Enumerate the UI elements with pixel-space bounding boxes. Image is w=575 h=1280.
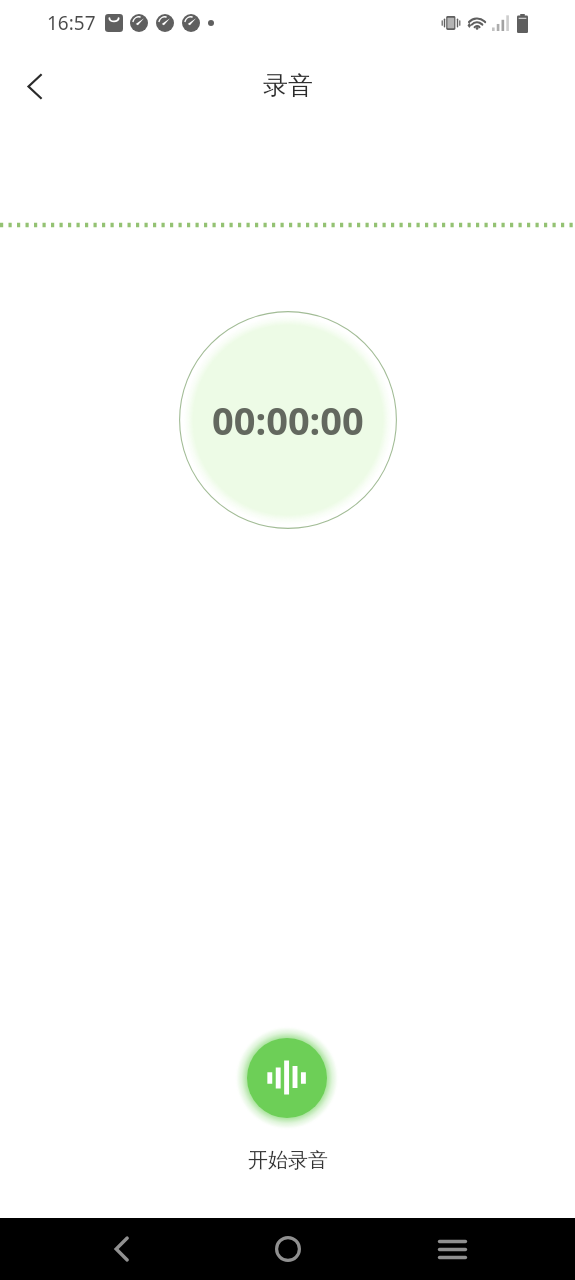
staticText: 录音 bbox=[263, 70, 313, 101]
button[interactable]: Start recording bbox=[247, 1038, 327, 1118]
staticText: 16:57 bbox=[47, 10, 96, 36]
button[interactable]: Back bbox=[89, 1218, 153, 1280]
button[interactable]: 开始录音 bbox=[248, 1148, 328, 1173]
button[interactable]: Recent apps bbox=[420, 1218, 484, 1280]
button[interactable]: Back bbox=[10, 62, 58, 110]
button[interactable]: Home bbox=[256, 1218, 320, 1280]
staticText: 00:00:00 bbox=[212, 394, 364, 446]
